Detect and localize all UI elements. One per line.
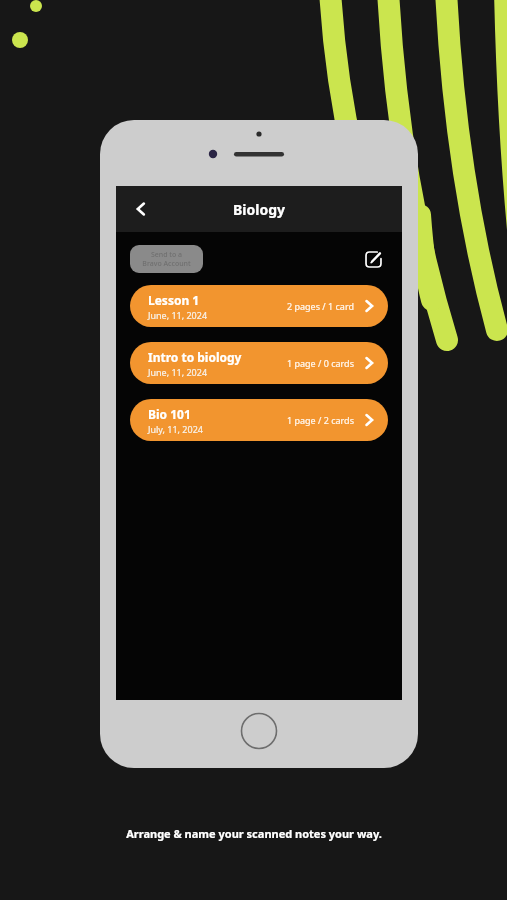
staticText: Arrange & name your scanned notes your w… xyxy=(126,826,382,841)
staticText: Intro to biology xyxy=(148,349,242,365)
staticText: Send to a Bravo Account xyxy=(142,250,191,268)
staticText: Bio 101 xyxy=(148,406,191,422)
button[interactable]: Bio 101 xyxy=(130,399,388,441)
staticText: July, 11, 2024 xyxy=(148,423,203,435)
staticText: June, 11, 2024 xyxy=(148,309,208,321)
button[interactable]: Edit xyxy=(358,244,388,274)
staticText: June, 11, 2024 xyxy=(148,366,208,378)
staticText: 2 pages / 1 card xyxy=(287,300,354,312)
button[interactable]: Send to a Bravo Account xyxy=(130,245,203,273)
button[interactable]: Back xyxy=(124,192,158,226)
staticText: 1 page / 2 cards xyxy=(287,414,354,426)
button[interactable]: Lesson 1 xyxy=(130,285,388,327)
staticText: 1 page / 0 cards xyxy=(287,357,354,369)
button[interactable]: Intro to biology xyxy=(130,342,388,384)
staticText: Lesson 1 xyxy=(148,292,200,308)
staticText: Biology xyxy=(233,200,286,219)
